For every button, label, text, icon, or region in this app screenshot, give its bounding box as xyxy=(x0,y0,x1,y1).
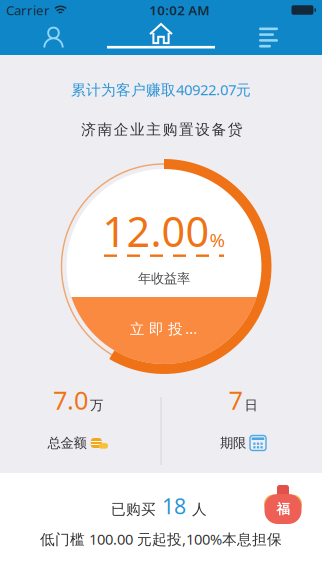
staticText: % xyxy=(209,227,225,252)
button[interactable]: Lucky bag reward xyxy=(260,480,306,526)
staticText: 福 xyxy=(276,501,289,517)
staticText: 已购买 xyxy=(111,500,156,518)
button[interactable]: 立即投资 xyxy=(66,297,261,364)
staticText: 万 xyxy=(90,397,103,414)
staticText: 低门槛 100.00 元起投,100%本息担保 xyxy=(40,529,282,549)
staticText: Carrier xyxy=(6,1,50,19)
staticText: 期限 xyxy=(220,435,246,451)
staticText: 7.0 xyxy=(53,383,88,417)
staticText: 立即投资 xyxy=(130,318,202,336)
staticText: 济南企业主购置设备贷 xyxy=(81,120,243,138)
staticText: 7 xyxy=(228,383,242,417)
staticText: 年收益率 xyxy=(138,270,190,287)
staticText: 人 xyxy=(192,500,207,518)
staticText: 10:02 AM xyxy=(149,1,209,19)
button[interactable]: Home xyxy=(107,20,215,55)
button[interactable]: Account xyxy=(0,20,107,55)
staticText: 18 xyxy=(162,492,186,520)
button[interactable]: Menu xyxy=(215,20,322,55)
staticText: 12.00 xyxy=(102,204,209,258)
staticText: 累计为客户赚取40922.07元 xyxy=(71,80,251,99)
staticText: 总金额 xyxy=(47,435,86,451)
staticText: 日 xyxy=(244,397,257,414)
